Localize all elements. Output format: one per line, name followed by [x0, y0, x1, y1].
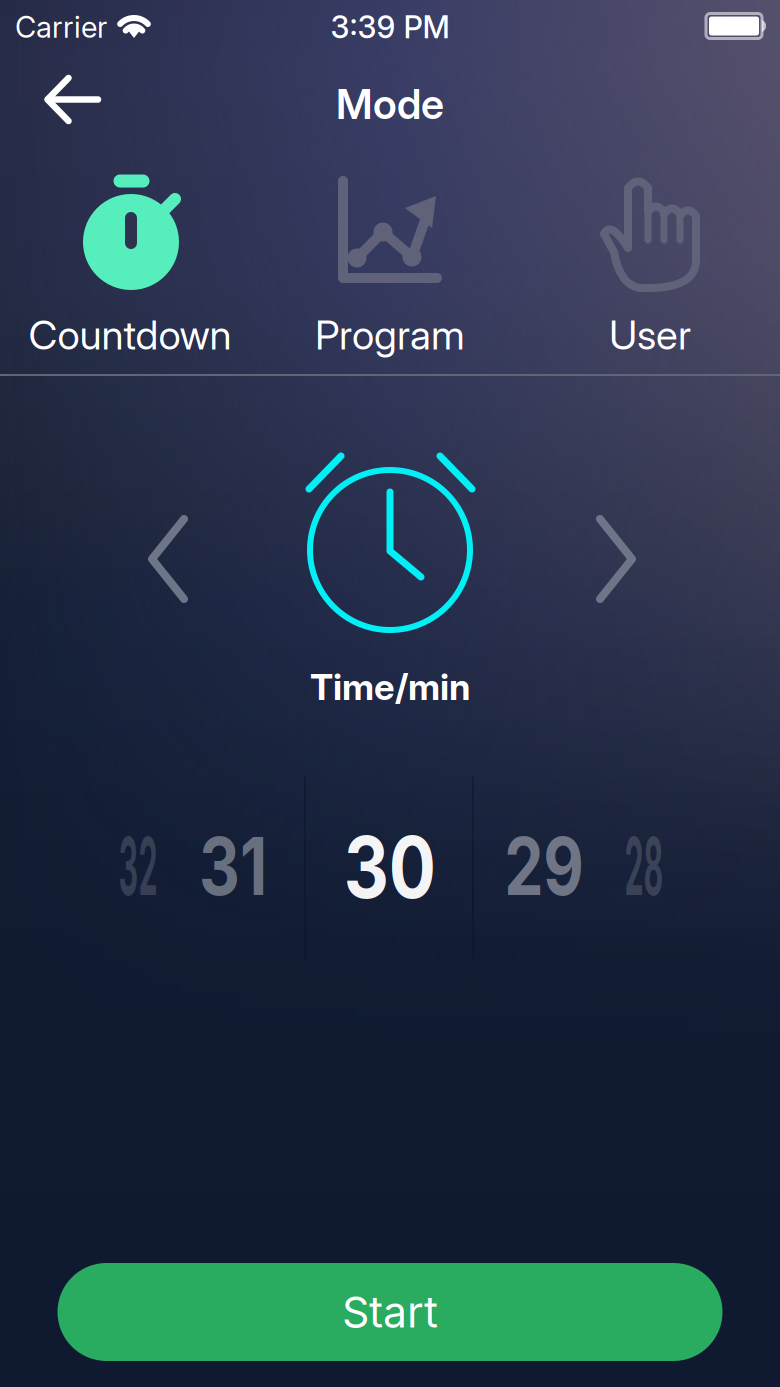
- button[interactable]: 28: [0, 0, 780, 1387]
- button[interactable]: User: [0, 0, 780, 1387]
- staticText: Carrier: [15, 9, 107, 45]
- staticText: 31: [190, 818, 276, 914]
- button[interactable]: Back: [0, 0, 780, 1387]
- button[interactable]: Next: [0, 0, 780, 1387]
- staticText: 32: [87, 818, 189, 914]
- staticText: User: [609, 311, 691, 359]
- staticText: Time/min: [310, 665, 470, 709]
- staticText: 3:39 PM: [330, 8, 449, 45]
- staticText: 29: [493, 818, 595, 914]
- staticText: 28: [593, 818, 695, 914]
- button[interactable]: 32: [0, 0, 780, 1387]
- button[interactable]: 29: [0, 0, 780, 1387]
- button[interactable]: Previous: [0, 0, 780, 1387]
- staticText: Countdown: [28, 311, 231, 359]
- button[interactable]: 31: [0, 0, 780, 1387]
- staticText: Mode: [336, 79, 444, 129]
- staticText: Program: [315, 311, 465, 359]
- button[interactable]: Program: [0, 0, 780, 1387]
- staticText: 30: [333, 815, 446, 919]
- button[interactable]: Countdown: [0, 0, 780, 1387]
- button[interactable]: Start: [57, 1263, 722, 1361]
- staticText: Start: [342, 1286, 438, 1338]
